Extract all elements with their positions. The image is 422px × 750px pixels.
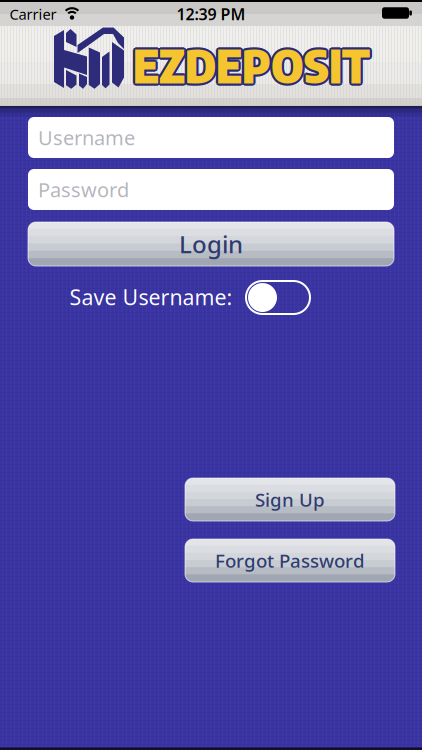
staticText: EZDEPOSIT [133, 33, 370, 92]
staticText: Save Username: [69, 283, 232, 311]
staticText: EZDEPOSIT [131, 37, 368, 95]
staticText: EZDEPOSIT [135, 37, 372, 95]
button[interactable]: Login [28, 222, 394, 266]
staticText: EZDEPOSIT [135, 34, 372, 92]
staticText: EZDEPOSIT [131, 35, 368, 94]
staticText: Password [38, 176, 129, 203]
staticText: Login [179, 228, 243, 260]
staticText: 12:39 PM [176, 3, 245, 25]
staticText: Carrier [9, 4, 56, 24]
button[interactable]: Forgot Password [185, 539, 395, 582]
staticText: EZDEPOSIT [133, 37, 370, 96]
staticText: Sign Up [255, 487, 325, 512]
staticText: EZDEPOSIT [133, 35, 370, 94]
button[interactable]: Sign Up [185, 478, 395, 521]
button[interactable]: Password [28, 169, 394, 210]
staticText: EZDEPOSIT [135, 35, 372, 94]
button[interactable]: Username [28, 117, 394, 158]
staticText: Forgot Password [215, 548, 365, 573]
staticText: EZDEPOSIT [131, 34, 368, 92]
staticText: Username [38, 124, 135, 151]
button[interactable]: Save Username [246, 281, 310, 314]
